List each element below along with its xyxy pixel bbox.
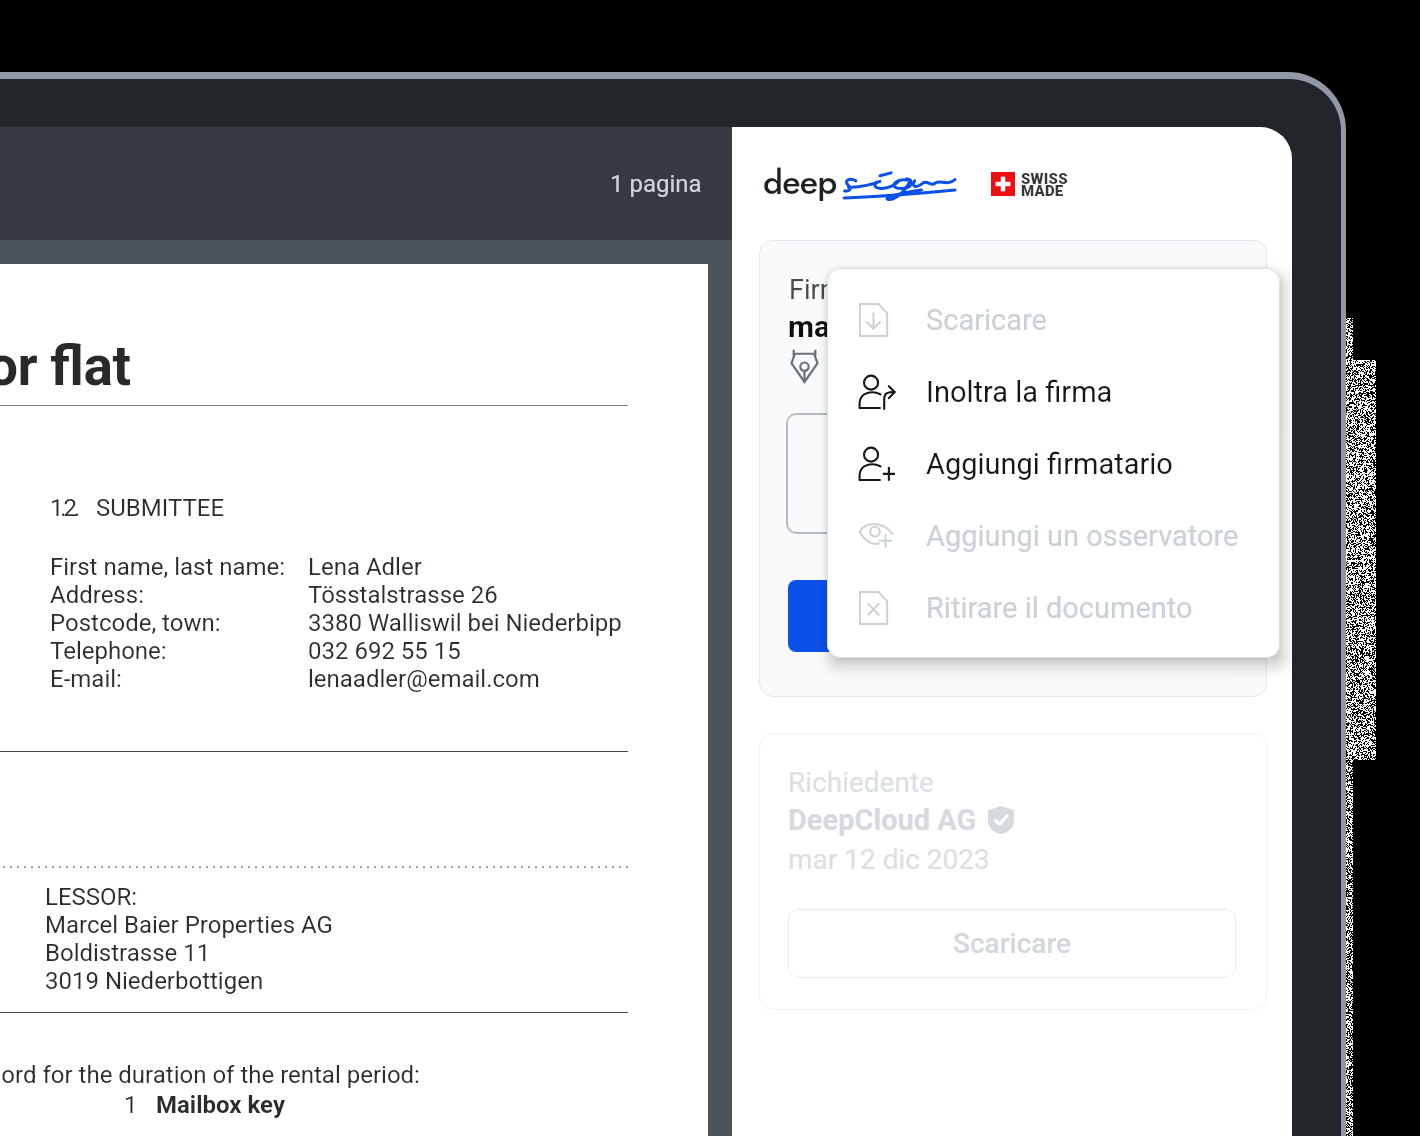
button[interactable]: Scaricare bbox=[788, 909, 1236, 978]
staticText: Address: bbox=[50, 581, 144, 609]
button[interactable]: Ritirare il documento bbox=[827, 578, 1280, 638]
staticText: ma bbox=[788, 309, 831, 344]
button[interactable]: Aggiungi firmatario bbox=[827, 434, 1280, 494]
staticText: Postcode, town: bbox=[50, 609, 221, 637]
staticText: Ritirare il documento bbox=[926, 591, 1193, 625]
staticText: dlord for the duration of the rental per… bbox=[0, 1061, 420, 1089]
staticText: lenaadler@email.com bbox=[308, 665, 540, 693]
button[interactable]: Inoltra la firma bbox=[827, 362, 1280, 422]
staticText: Lena Adler bbox=[308, 553, 422, 581]
button[interactable]: Aggiungi un osservatore bbox=[827, 506, 1280, 566]
staticText: E-mail: bbox=[50, 665, 122, 693]
staticText: Mailbox key bbox=[156, 1091, 286, 1119]
button[interactable]: Scaricare bbox=[827, 290, 1280, 350]
staticText: Aggiungi firmatario bbox=[926, 447, 1173, 481]
staticText: 1.2. bbox=[50, 494, 77, 522]
staticText: mar 12 dic 2023 bbox=[788, 843, 990, 876]
staticText: 3380 Walliswil bei Niederbipp bbox=[308, 609, 622, 637]
staticText: Aggiungi un osservatore bbox=[926, 519, 1239, 553]
staticText: Scaricare bbox=[953, 927, 1072, 960]
staticText: Firma bbox=[789, 274, 859, 306]
staticText: 032 692 55 15 bbox=[308, 637, 461, 665]
staticText: Inoltra la firma bbox=[926, 375, 1113, 409]
staticText: 1 bbox=[124, 1091, 138, 1119]
staticText: Marcel Baier Properties AG bbox=[45, 911, 333, 939]
staticText: SUBMITTEE bbox=[96, 494, 225, 522]
button[interactable] bbox=[788, 580, 1236, 652]
staticText: LESSOR: bbox=[45, 883, 138, 911]
staticText: deep bbox=[763, 158, 837, 207]
staticText: Tösstalstrasse 26 bbox=[308, 581, 498, 609]
staticText: Telephone: bbox=[50, 637, 167, 665]
staticText: SWISS MADE bbox=[1021, 170, 1068, 199]
staticText: 3019 Niederbottigen bbox=[45, 967, 264, 995]
staticText: 1 pagina bbox=[610, 170, 702, 198]
staticText: Richiedente bbox=[788, 766, 934, 799]
staticText: Boldistrasse 11 bbox=[45, 939, 211, 967]
staticText: Scaricare bbox=[926, 303, 1047, 337]
staticText: DeepCloud AG bbox=[788, 803, 977, 837]
staticText: or flat bbox=[0, 334, 131, 398]
staticText: First name, last name: bbox=[50, 553, 286, 581]
